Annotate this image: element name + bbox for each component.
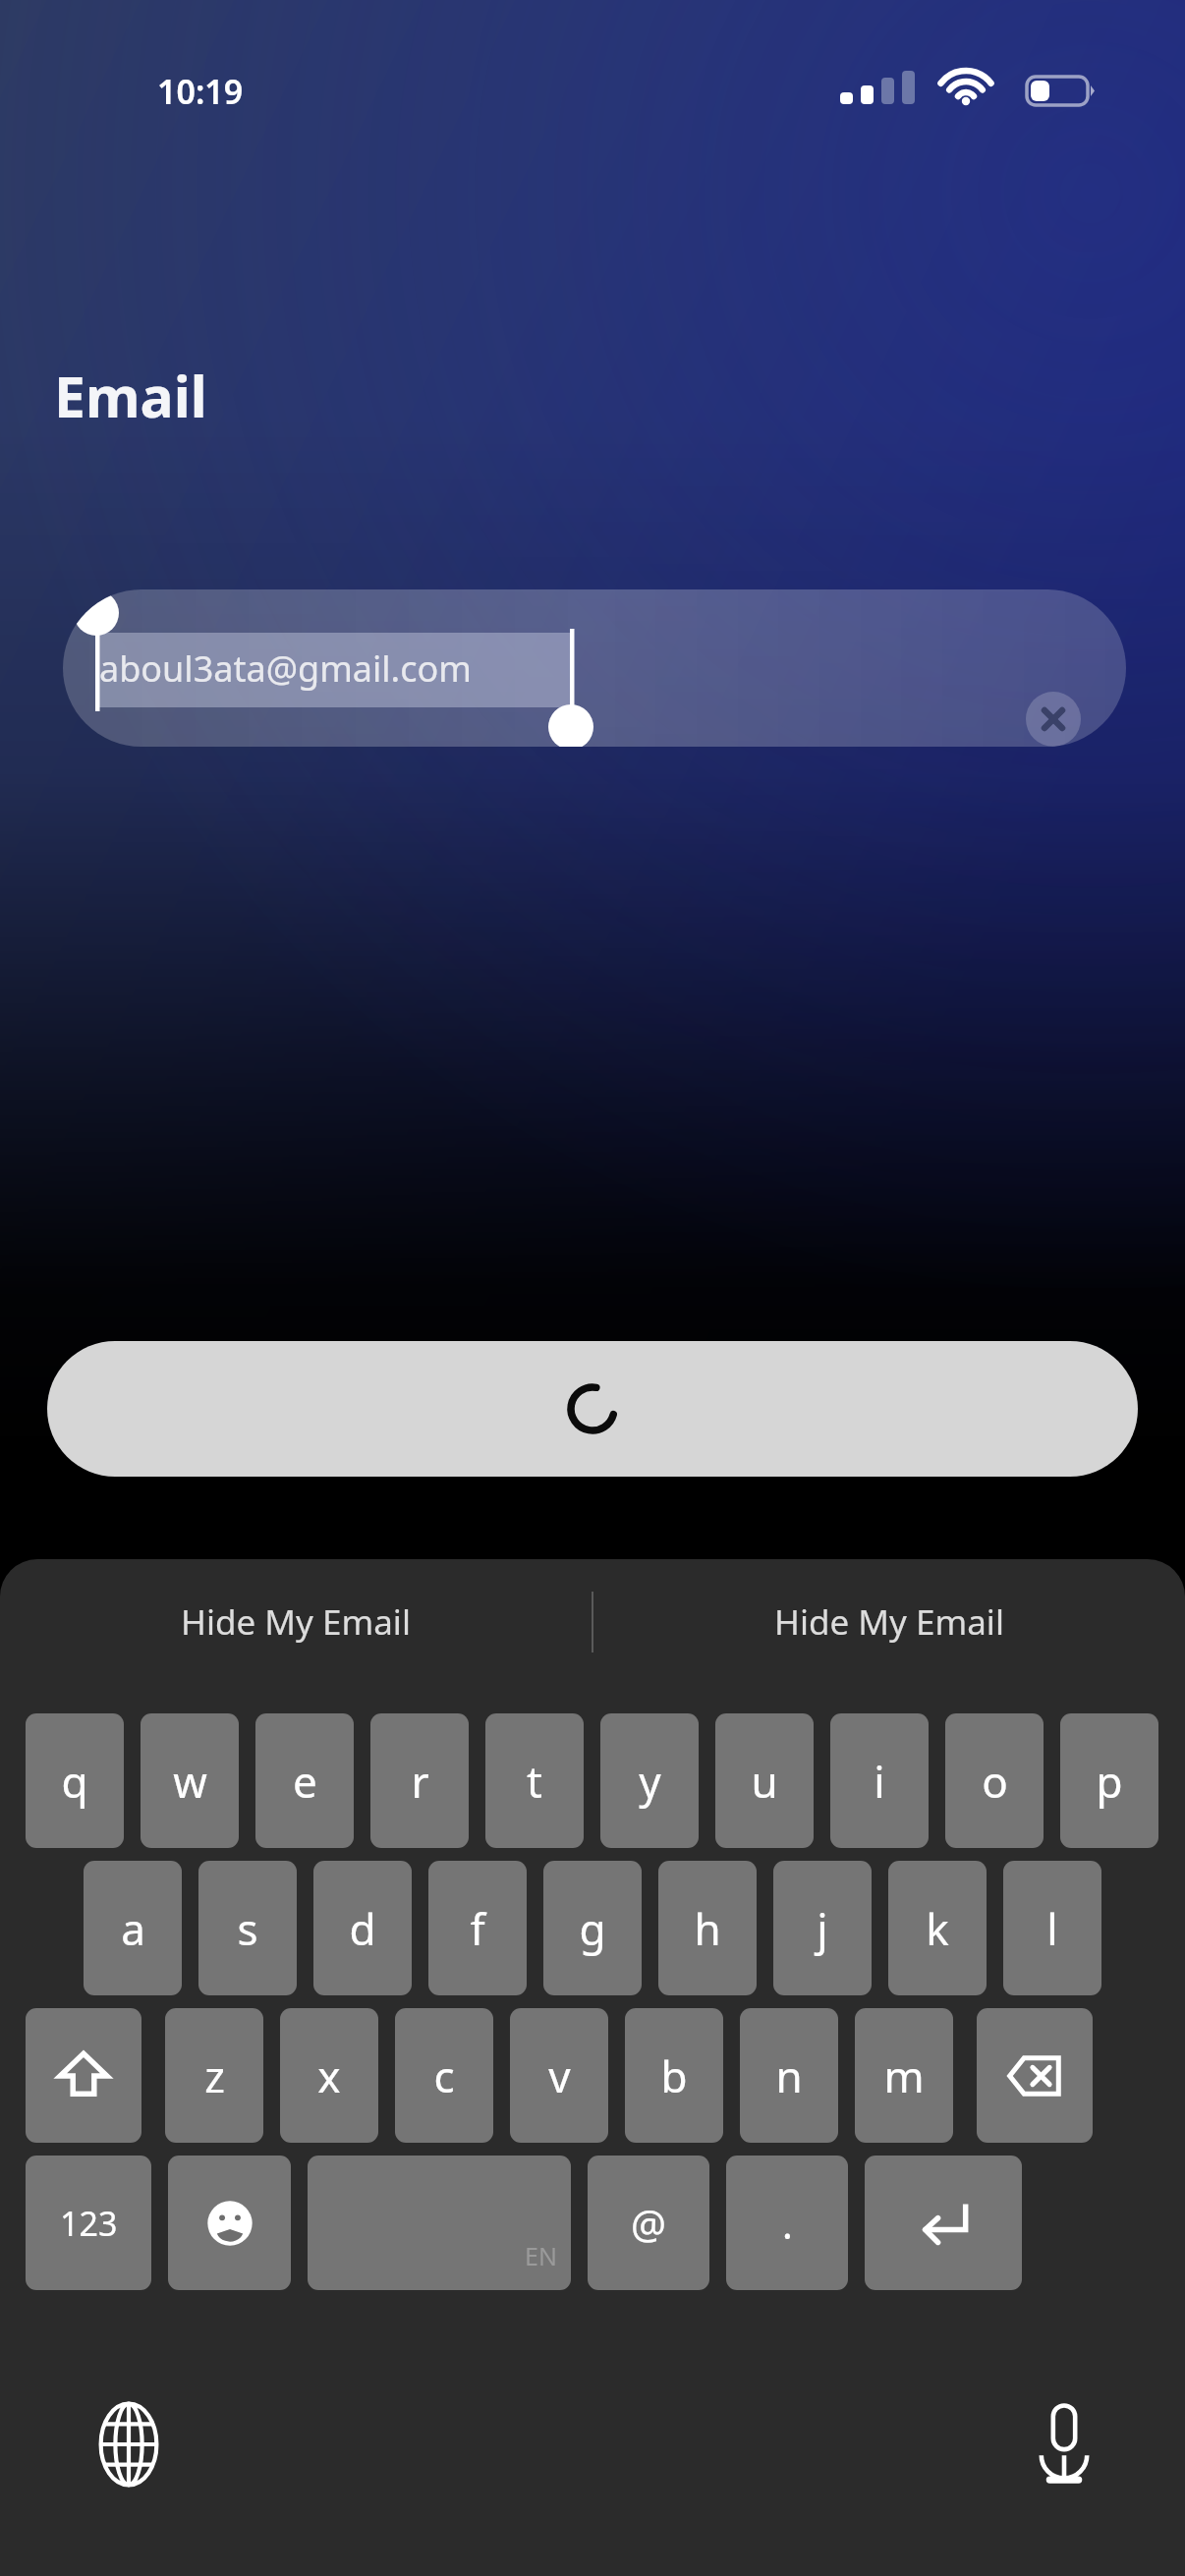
button[interactable]: l	[1003, 1861, 1101, 1995]
button[interactable]: Hide My Email	[0, 1559, 592, 1685]
button[interactable]: Clear text	[1026, 692, 1081, 747]
staticText: v	[548, 2046, 571, 2105]
staticText: 123	[60, 2201, 118, 2246]
button[interactable]: r	[370, 1713, 469, 1848]
button[interactable]: Space	[308, 2156, 571, 2290]
staticText: Hide My Email	[181, 1598, 411, 1646]
button[interactable]: h	[658, 1861, 757, 1995]
staticText: z	[204, 2046, 225, 2105]
staticText: c	[433, 2046, 455, 2105]
button[interactable]: q	[26, 1713, 124, 1848]
button[interactable]: p	[1060, 1713, 1158, 1848]
button[interactable]: u	[715, 1713, 814, 1848]
button[interactable]: c	[395, 2008, 493, 2143]
staticText: a	[121, 1899, 145, 1958]
button[interactable]: aboul3ata@gmail.com	[63, 589, 1126, 747]
staticText: n	[775, 2046, 803, 2105]
staticText: k	[926, 1899, 949, 1958]
button[interactable]: d	[313, 1861, 412, 1995]
button[interactable]: n	[740, 2008, 838, 2143]
button[interactable]: Return	[865, 2156, 1022, 2290]
button[interactable]: t	[485, 1713, 584, 1848]
staticText: b	[660, 2046, 688, 2105]
staticText: @	[631, 2197, 666, 2250]
button[interactable]: Emoji	[168, 2156, 291, 2290]
button[interactable]: s	[198, 1861, 297, 1995]
staticText: d	[349, 1899, 376, 1958]
button[interactable]: x	[280, 2008, 378, 2143]
button[interactable]: b	[625, 2008, 723, 2143]
staticText: y	[639, 1752, 661, 1811]
button[interactable]: Backspace	[977, 2008, 1093, 2143]
button[interactable]: o	[945, 1713, 1044, 1848]
button[interactable]: z	[165, 2008, 263, 2143]
button[interactable]: .	[726, 2156, 848, 2290]
staticText: q	[61, 1752, 88, 1811]
staticText: t	[527, 1752, 542, 1811]
button[interactable]: w	[141, 1713, 239, 1848]
staticText: Email	[54, 358, 207, 434]
staticText: m	[883, 2046, 925, 2105]
button[interactable]: e	[255, 1713, 354, 1848]
button[interactable]: f	[428, 1861, 527, 1995]
button[interactable]: v	[510, 2008, 608, 2143]
button[interactable]: m	[855, 2008, 953, 2143]
staticText: l	[1046, 1899, 1058, 1958]
button[interactable]: @	[588, 2156, 709, 2290]
button[interactable]: Switch keyboard language	[74, 2389, 184, 2499]
button[interactable]: Voice input	[1009, 2389, 1119, 2499]
staticText: i	[874, 1752, 885, 1811]
staticText: EN	[525, 2239, 557, 2272]
button[interactable]: g	[543, 1861, 642, 1995]
staticText: g	[579, 1899, 606, 1958]
button[interactable]: a	[84, 1861, 182, 1995]
button[interactable]: i	[830, 1713, 929, 1848]
button[interactable]: Hide My Email	[593, 1559, 1185, 1685]
staticText: h	[694, 1899, 721, 1958]
staticText: aboul3ata@gmail.com	[99, 644, 472, 693]
staticText: .	[782, 2197, 793, 2250]
staticText: Hide My Email	[774, 1598, 1004, 1646]
button[interactable]: k	[888, 1861, 987, 1995]
staticText: p	[1096, 1752, 1123, 1811]
button[interactable]: 123	[26, 2156, 151, 2290]
staticText: 10:19	[157, 69, 244, 114]
staticText: f	[470, 1899, 485, 1958]
button[interactable]: Shift	[26, 2008, 141, 2143]
staticText: s	[237, 1899, 258, 1958]
button[interactable]: j	[773, 1861, 872, 1995]
staticText: r	[411, 1752, 429, 1811]
staticText: e	[293, 1752, 317, 1811]
button[interactable]: y	[600, 1713, 699, 1848]
staticText: x	[317, 2046, 341, 2105]
button[interactable]: Continue, loading	[47, 1341, 1138, 1477]
staticText: o	[982, 1752, 1008, 1811]
staticText: w	[173, 1752, 207, 1811]
staticText: u	[751, 1752, 778, 1811]
staticText: j	[817, 1899, 828, 1958]
